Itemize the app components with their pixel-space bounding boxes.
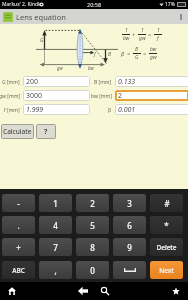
staticText: 5 (90, 220, 95, 231)
staticText: β (108, 107, 112, 114)
staticText: 0.133 (118, 77, 136, 87)
staticText: G [mm] (2, 79, 20, 86)
staticText: 1 (125, 27, 128, 34)
staticText: 3000 (26, 91, 43, 101)
button[interactable]: . (2, 216, 35, 234)
button[interactable]: 2 (76, 194, 109, 212)
staticText: Lens equation (16, 12, 66, 22)
staticText: 1.999 (26, 105, 44, 115)
staticText: gw (139, 35, 146, 42)
button[interactable]: Search (94, 282, 116, 300)
staticText: 20:58 (87, 1, 102, 8)
button[interactable]: 4 (39, 216, 72, 234)
staticText: # (164, 198, 170, 209)
staticText: = (148, 31, 152, 38)
staticText: f [mm] (4, 107, 20, 114)
staticText: bw (88, 65, 94, 71)
staticText: G (135, 54, 139, 61)
button[interactable]: 9 (113, 238, 146, 256)
button[interactable]: Space (113, 261, 146, 279)
staticText: bw (123, 35, 130, 42)
staticText: + (132, 31, 136, 38)
button[interactable]: 3 (113, 194, 146, 212)
button[interactable]: 0.001 (115, 104, 188, 115)
button[interactable]: 1 (39, 194, 72, 212)
button[interactable]: 5 (76, 216, 109, 234)
staticText: , (54, 265, 57, 276)
button[interactable]: 0 (76, 261, 109, 279)
staticText: B (108, 51, 112, 58)
button[interactable]: Next (150, 261, 183, 279)
staticText: 1 (53, 198, 58, 209)
staticText: . (17, 220, 20, 231)
button[interactable]: Help (36, 124, 56, 139)
staticText: G (40, 37, 44, 44)
button[interactable]: Home (1, 282, 23, 300)
staticText: * (164, 220, 169, 231)
staticText: Delete (156, 243, 177, 252)
button[interactable]: + (2, 238, 35, 256)
staticText: 1 (157, 27, 160, 34)
staticText: 4 (53, 220, 58, 231)
button[interactable]: # (150, 194, 183, 212)
staticText: B [mm] (94, 79, 112, 86)
staticText: 3 (127, 198, 132, 209)
button[interactable]: 1.999 (23, 104, 90, 115)
staticText: f (94, 51, 96, 58)
staticText: ABC (12, 266, 25, 275)
button[interactable]: , (39, 261, 72, 279)
button[interactable]: 200 (23, 76, 90, 87)
staticText: Calculate (3, 127, 32, 136)
button[interactable]: Delete (150, 238, 183, 256)
button[interactable]: 0.133 (115, 76, 188, 87)
staticText: 7 (53, 242, 58, 253)
staticText: = (143, 50, 147, 57)
staticText: 6 (127, 220, 132, 231)
button[interactable]: Favorites (165, 282, 187, 300)
staticText: 1 (141, 27, 144, 34)
staticText: = (127, 50, 131, 57)
staticText: β (121, 50, 125, 57)
staticText: bw (150, 46, 157, 53)
button[interactable]: ABC (2, 261, 35, 279)
button[interactable]: Calculate (1, 124, 34, 139)
staticText: f (157, 35, 159, 42)
staticText: 17% (165, 1, 175, 8)
staticText: gw (150, 54, 157, 61)
staticText: Next (159, 266, 174, 275)
button[interactable]: 2 (115, 90, 188, 101)
staticText: gw [mm] (0, 93, 20, 100)
staticText: gw (57, 65, 63, 71)
staticText: 0 (90, 265, 95, 276)
staticText: - (17, 198, 20, 209)
button[interactable]: 7 (39, 238, 72, 256)
staticText: 8 (90, 242, 95, 253)
button[interactable]: Back (72, 282, 94, 300)
button[interactable]: 8 (76, 238, 109, 256)
staticText: 2 (118, 91, 123, 101)
staticText: Markus' 2. Kindle (2, 1, 43, 8)
button[interactable]: More options (174, 9, 188, 24)
staticText: 9 (127, 242, 132, 253)
button[interactable]: * (150, 216, 183, 234)
staticText: 2 (90, 198, 95, 209)
staticText: ? (44, 127, 48, 137)
staticText: 200 (26, 77, 39, 87)
staticText: 0.001 (118, 105, 136, 115)
staticText: B (135, 46, 139, 53)
button[interactable]: 6 (113, 216, 146, 234)
button[interactable]: - (2, 194, 35, 212)
staticText: bw [mm] (91, 93, 112, 100)
staticText: + (16, 242, 21, 253)
button[interactable]: 3000 (23, 90, 90, 101)
